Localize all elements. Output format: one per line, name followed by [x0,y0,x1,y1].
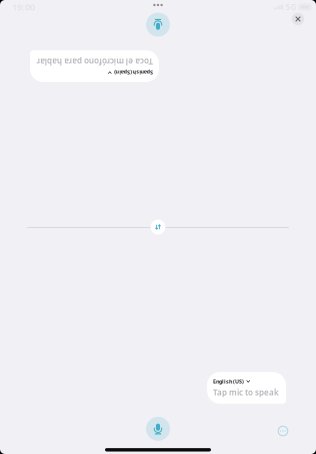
staticText: 5G [285,2,296,12]
button[interactable]: Close [287,8,309,30]
button[interactable]: English (US) [207,372,286,404]
button[interactable]: More options [147,0,169,10]
button[interactable]: Microphone [146,417,170,441]
staticText: English (US) [213,378,244,385]
staticText: Tap mic to speak [213,387,279,398]
staticText: 19:00 [12,1,35,13]
button[interactable]: Swap languages [148,217,168,237]
button[interactable]: Conversation history [270,418,296,444]
